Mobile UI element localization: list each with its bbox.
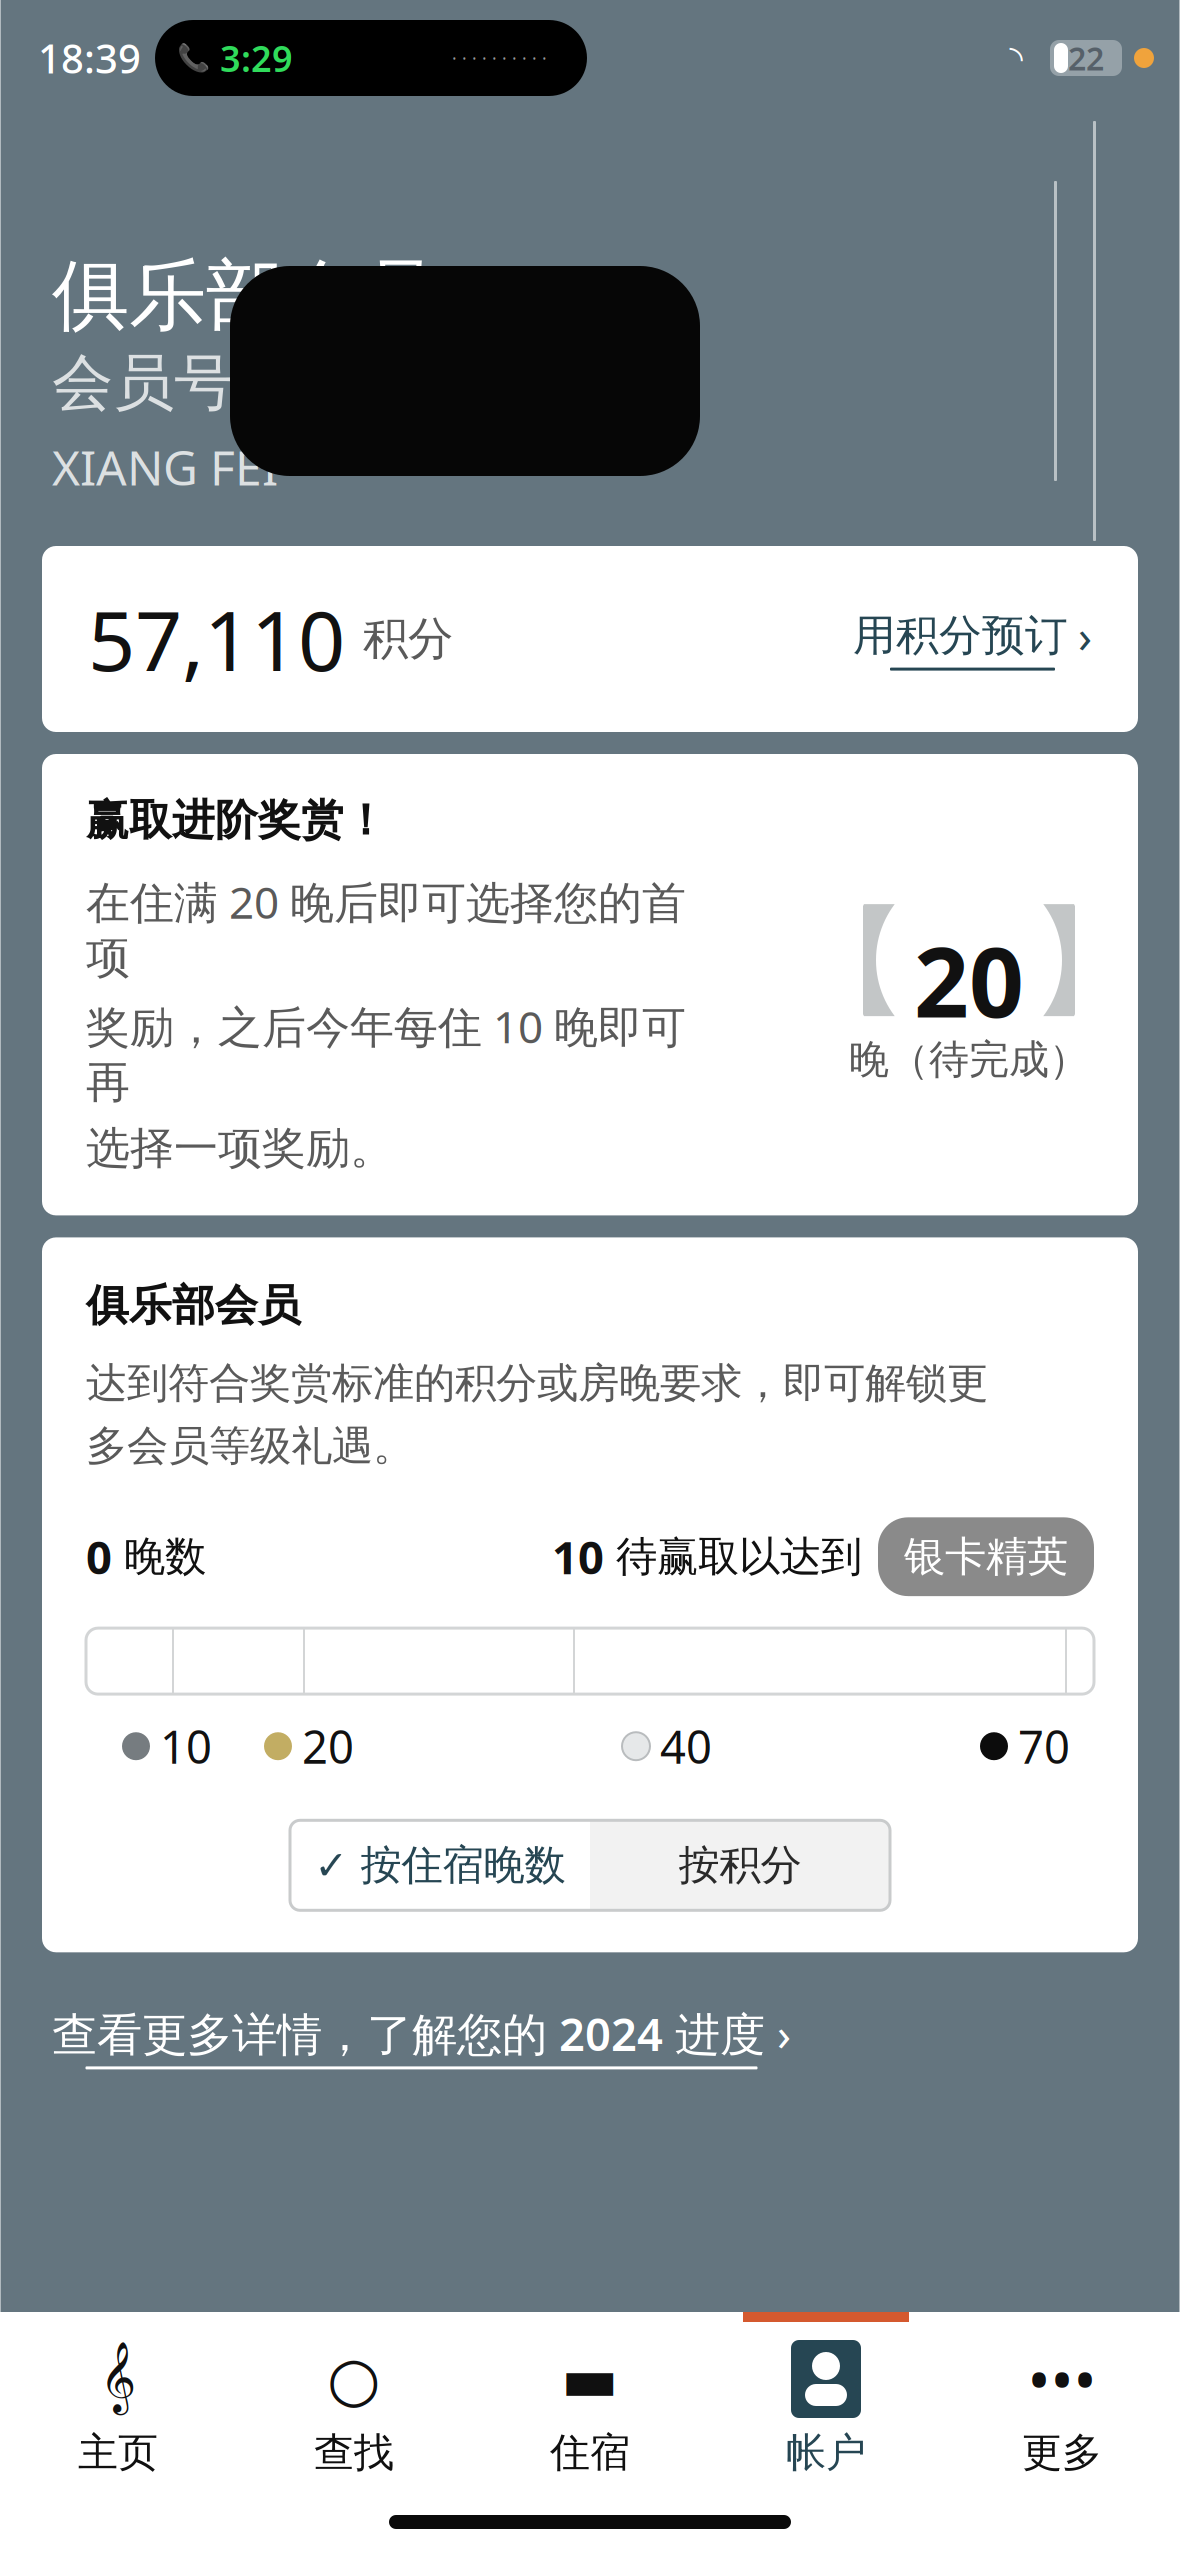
staticText: › <box>1078 605 1092 666</box>
staticText: 在住满 20 晚后即可选择您的首项 <box>86 872 686 985</box>
staticText: ◝ <box>1009 38 1022 78</box>
button[interactable]: 更多 <box>944 2312 1180 2488</box>
button[interactable]: 57,110 <box>42 546 1138 732</box>
staticText: 查看更多详情，了解您的 2024 进度 <box>52 2003 765 2063</box>
staticText: · · · · · · · · · · <box>452 46 547 69</box>
staticText: 达到符合奖赏标准的积分或房晚要求，即可解锁更 <box>86 1358 988 1409</box>
staticText: ✓ <box>314 1843 348 1888</box>
staticText: 俱乐部会员 <box>52 248 437 343</box>
staticText: 18:39 <box>38 31 141 84</box>
staticText: 70 <box>1018 1716 1070 1776</box>
staticText: 晚数 <box>124 1531 206 1582</box>
staticText: › <box>777 2003 791 2063</box>
staticText: ••• <box>1027 2338 1096 2420</box>
staticText: 20 <box>302 1716 354 1776</box>
button[interactable]: 查看更多详情，了解您的 2024 进度 <box>0 1988 1180 2084</box>
staticText: 帐户 <box>786 2428 866 2477</box>
staticText: 📞 <box>177 43 210 73</box>
staticText: 查找 <box>314 2428 394 2477</box>
staticText: 40 <box>660 1716 712 1776</box>
staticText: 22 <box>1068 37 1104 79</box>
staticText: 会员号 <box>52 345 253 421</box>
staticText: XIANG FEI <box>52 435 278 499</box>
staticText: 更多 <box>1022 2428 1102 2477</box>
staticText: 赢取进阶奖赏！ <box>86 794 387 846</box>
staticText: 3:29 <box>220 34 293 82</box>
staticText: 57,110 <box>88 584 345 694</box>
staticText: 𝄞 <box>100 2349 136 2409</box>
staticText: ○ <box>327 2344 381 2414</box>
staticText: 10 <box>552 1527 604 1587</box>
staticText: 晚（待完成） <box>849 1035 1089 1084</box>
staticText: 积分 <box>363 611 453 667</box>
button[interactable]: 按积分 <box>590 1820 890 1910</box>
staticText: 10 <box>160 1716 212 1776</box>
staticText: 俱乐部会员 <box>86 1279 301 1332</box>
staticText: 按积分 <box>678 1840 801 1891</box>
staticText: 按住宿晚数 <box>360 1840 565 1891</box>
button[interactable]: 主页 <box>0 2312 236 2488</box>
staticText: 选择一项奖励。 <box>86 1121 394 1175</box>
staticText: 多会员等级礼遇。 <box>86 1421 414 1471</box>
button[interactable]: 帐户 <box>708 2312 944 2488</box>
button[interactable]: 查找 <box>236 2312 472 2488</box>
button[interactable]: 住宿 <box>472 2312 708 2488</box>
staticText: 用积分预订 <box>853 609 1068 662</box>
staticText: 住宿 <box>550 2428 630 2477</box>
staticText: 待赢取以达到 <box>616 1531 862 1582</box>
staticText: ▬ <box>561 2344 619 2414</box>
staticText: 银卡精英 <box>904 1531 1068 1582</box>
staticText: 奖励，之后今年每住 10 晚即可再 <box>86 997 686 1109</box>
staticText: 20 <box>914 916 1024 1044</box>
button[interactable]: ✓ <box>290 1820 590 1910</box>
staticText: 0 <box>86 1527 112 1587</box>
staticText: 主页 <box>78 2428 158 2477</box>
